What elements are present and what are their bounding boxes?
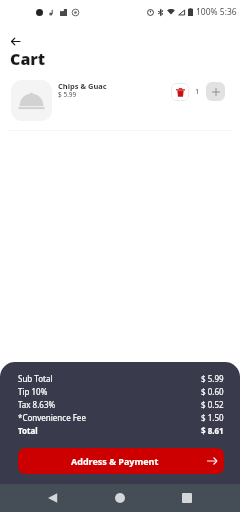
staticText: 100% 5:36: [196, 6, 237, 18]
staticText: $ 0.52: [201, 399, 224, 410]
staticText: Sub Total: [18, 373, 53, 384]
staticText: $ 8.61: [201, 425, 224, 436]
button[interactable]: Recent apps: [173, 484, 201, 512]
staticText: *Convenience Fee: [18, 412, 86, 423]
button[interactable]: Remove item: [171, 83, 189, 101]
button[interactable]: Back: [6, 32, 24, 50]
staticText: $ 5.99: [201, 373, 224, 384]
staticText: $ 5.99: [58, 90, 77, 99]
staticText: Total: [18, 425, 38, 436]
staticText: Cart: [10, 48, 46, 70]
staticText: $ 0.60: [201, 386, 224, 397]
button[interactable]: Address & Payment: [18, 448, 224, 474]
staticText: Tax 8.63%: [18, 399, 56, 410]
staticText: Address & Payment: [71, 455, 159, 467]
staticText: Chips & Guac: [58, 81, 107, 91]
staticText: Tip 10%: [18, 386, 48, 397]
button[interactable]: Home: [106, 484, 134, 512]
button[interactable]: Back: [39, 484, 67, 512]
staticText: 1: [195, 86, 200, 96]
staticText: $ 1.50: [201, 412, 224, 423]
button[interactable]: Add one: [206, 82, 225, 101]
